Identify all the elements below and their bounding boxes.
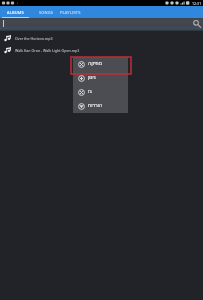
staticText: Over the Horizon.mp3 <box>15 36 53 41</box>
button[interactable]: PLAYLISTS <box>55 6 85 18</box>
staticText: גז <box>88 89 92 95</box>
button[interactable]: Walk Kan Oran - Walk Light Open.mp3 <box>0 44 203 56</box>
staticText: ניגון <box>88 75 96 81</box>
staticText: PLAYLISTS <box>60 10 81 15</box>
button[interactable]: גז <box>73 85 128 99</box>
button[interactable]: הורדות <box>73 99 128 113</box>
button[interactable]: ALBUMS <box>0 6 30 18</box>
button[interactable]: SONGS <box>33 6 59 18</box>
staticText: הורדות <box>88 103 103 109</box>
staticText: Walk Kan Oran - Walk Light Open.mp3 <box>15 48 80 53</box>
button[interactable]: מחיקה <box>73 57 128 71</box>
button[interactable]: ניגון <box>73 71 128 85</box>
staticText: 12:31 <box>192 1 202 6</box>
button[interactable]: Search <box>192 19 201 28</box>
staticText: ALBUMS <box>7 10 24 15</box>
staticText: SONGS <box>39 10 54 15</box>
button[interactable]: Over the Horizon.mp3 <box>0 32 203 44</box>
staticText: מחיקה <box>88 61 103 67</box>
